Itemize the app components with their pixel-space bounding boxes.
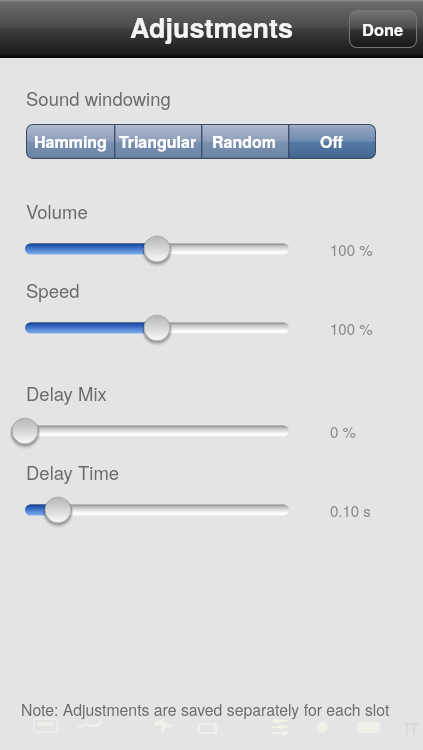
button[interactable]: Off (288, 125, 375, 158)
button[interactable]: Delay Time (12, 490, 303, 530)
staticText: Sound windowing (26, 85, 171, 111)
button[interactable]: Volume (12, 229, 303, 269)
staticText: Off (320, 130, 343, 153)
staticText: Speed (26, 277, 80, 303)
staticText: Triangular (119, 130, 197, 153)
button[interactable]: Hamming (27, 125, 114, 158)
staticText: Done (362, 17, 404, 41)
staticText: Note: Adjustments are saved separately f… (21, 698, 390, 721)
staticText: 100 % (330, 239, 373, 260)
staticText: 0 % (330, 421, 356, 442)
button[interactable]: Triangular (114, 125, 201, 158)
staticText: Delay Time (26, 459, 120, 485)
button[interactable]: Speed (12, 308, 303, 348)
staticText: Adjustments (130, 8, 294, 47)
staticText: Volume (26, 198, 88, 224)
staticText: 100 % (330, 318, 373, 339)
button[interactable]: Delay Mix (12, 411, 303, 451)
button[interactable]: Done (350, 11, 416, 47)
button[interactable]: Random (201, 125, 288, 158)
staticText: Hamming (34, 130, 107, 153)
staticText: 0.10 s (330, 500, 371, 521)
staticText: Random (212, 130, 277, 153)
staticText: Delay Mix (26, 380, 107, 406)
